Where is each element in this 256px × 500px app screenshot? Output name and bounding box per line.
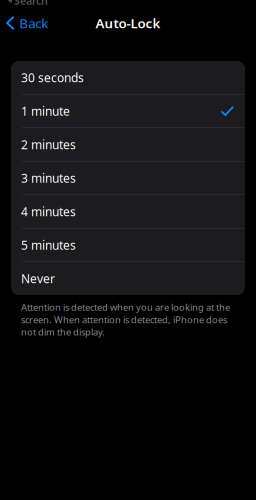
staticText: Attention is detected when you are looki… — [21, 301, 230, 338]
button[interactable]: Search — [0, 0, 256, 11]
staticText: Never — [21, 270, 55, 286]
staticText: 4 minutes — [21, 203, 76, 219]
staticText: 1 minute — [21, 103, 70, 119]
button[interactable]: Back — [0, 10, 48, 36]
button[interactable]: 2 minutes — [11, 128, 245, 161]
staticText: Search — [14, 0, 48, 8]
button[interactable]: 1 minute — [11, 94, 245, 128]
staticText: 30 seconds — [21, 69, 84, 85]
button[interactable]: Never — [11, 262, 245, 295]
staticText: Auto-Lock — [95, 14, 160, 32]
button[interactable]: 30 seconds — [11, 61, 245, 94]
button[interactable]: 4 minutes — [11, 195, 245, 228]
button[interactable]: 5 minutes — [11, 228, 245, 262]
staticText: 5 minutes — [21, 237, 76, 253]
staticText: 3 minutes — [21, 170, 76, 186]
staticText: Back — [19, 14, 48, 32]
staticText: 2 minutes — [21, 136, 76, 152]
button[interactable]: 3 minutes — [11, 161, 245, 195]
